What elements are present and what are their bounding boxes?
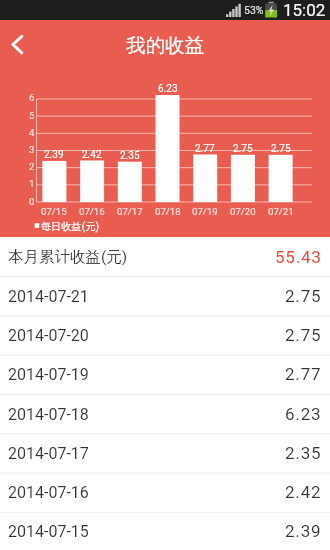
staticText: 1 [29,178,35,189]
staticText: 2.75 [285,325,322,345]
staticText: 4 [29,127,35,138]
staticText: 2 [29,161,35,172]
staticText: 5 [29,110,35,121]
staticText: 07/19 [192,206,218,217]
staticText: 53% [244,4,264,16]
staticText: 3 [29,144,35,155]
staticText: 07/20 [230,206,256,217]
staticText: 2014-07-19 [8,365,89,384]
staticText: 2.77 [195,143,215,155]
staticText: 2.39 [44,149,64,161]
staticText: 07/18 [155,206,181,217]
staticText: 2.75 [271,143,291,155]
staticText: 2.75 [233,143,253,155]
staticText: 6.23 [158,83,178,95]
staticText: 每日收益(元) [41,220,99,233]
staticText: 2.35 [120,150,140,162]
staticText: 2014-07-21 [8,287,89,306]
staticText: 2.35 [285,443,322,463]
staticText: 我的收益 [126,33,204,58]
staticText: 本月累计收益(元) [8,247,128,267]
staticText: 2.42 [285,482,322,502]
staticText: 2014-07-18 [8,405,89,424]
staticText: 55.43 [275,247,322,267]
staticText: 2.77 [285,364,322,384]
staticText: 2.39 [285,521,322,541]
staticText: 07/17 [117,206,143,217]
staticText: 2014-07-17 [8,444,89,463]
staticText: 2014-07-20 [8,326,89,345]
staticText: 07/16 [79,206,105,217]
staticText: 2.42 [82,149,102,161]
staticText: 07/21 [268,206,294,217]
staticText: 2.75 [285,286,322,306]
staticText: 0 [29,196,35,207]
staticText: 07/15 [41,206,67,217]
staticText: 6 [29,92,35,103]
staticText: 6.23 [285,404,322,424]
staticText: 15:02 [283,0,326,20]
staticText: 2014-07-16 [8,483,89,502]
staticText: 2014-07-15 [8,522,89,541]
